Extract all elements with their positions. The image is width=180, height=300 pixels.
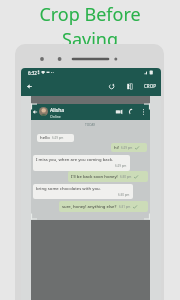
staticText: Saving (62, 27, 118, 52)
staticText: hi! (114, 145, 119, 151)
button[interactable]: I miss you, when are you coming back. (33, 155, 130, 171)
staticText: Online (50, 114, 61, 119)
staticText: TODAY (85, 123, 96, 127)
button[interactable]: Flip (125, 81, 135, 91)
staticText: I'll be back soon honey! (71, 174, 118, 180)
button[interactable]: Back (25, 81, 35, 91)
button[interactable]: CROP (141, 81, 159, 91)
staticText: 6:29 pm (121, 146, 133, 150)
button[interactable]: bring some chocolates with you. (33, 184, 133, 199)
button[interactable]: hello (37, 134, 74, 142)
staticText: bring some chocolates with you. (36, 186, 101, 192)
button[interactable]: Rotate (107, 81, 117, 91)
button[interactable]: I'll be back soon honey! (68, 171, 148, 182)
staticText: 6:31 pm (119, 205, 131, 209)
staticText: sure, honey! anything else? (62, 204, 117, 210)
staticText: 6:32 (28, 70, 37, 76)
staticText: Alisha (50, 107, 65, 114)
staticText: 6:30 pm (118, 193, 130, 197)
staticText: I miss you, when are you coming back. (36, 157, 114, 163)
staticText: hello (40, 135, 50, 141)
staticText: CROP (144, 83, 156, 89)
staticText: 6:30 pm (120, 175, 132, 179)
button[interactable]: sure, honey! anything else? (59, 201, 148, 212)
staticText: Crop Before (39, 2, 141, 27)
button[interactable]: hi! (111, 143, 147, 152)
staticText: 6:29 pm (52, 136, 64, 140)
staticText: 6:29 pm (115, 164, 127, 168)
